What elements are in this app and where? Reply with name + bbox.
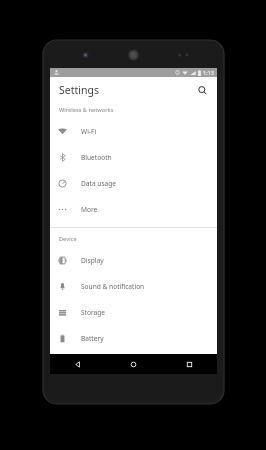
staticText: Display — [81, 256, 104, 265]
button[interactable]: Data usage — [50, 170, 217, 196]
staticText: More — [81, 205, 98, 214]
button[interactable]: Storage — [50, 299, 217, 325]
button[interactable]: Back — [50, 354, 105, 374]
button[interactable]: Bluetooth — [50, 144, 217, 170]
button[interactable]: Search — [194, 82, 210, 98]
button[interactable]: Recent apps — [161, 354, 217, 374]
button[interactable]: Battery — [50, 325, 217, 351]
staticText: Settings — [59, 83, 99, 97]
button[interactable]: Sound & notification — [50, 273, 217, 299]
staticText: Sound & notification — [81, 282, 145, 291]
button[interactable]: Home — [105, 354, 161, 374]
staticText: Data usage — [81, 179, 117, 188]
staticText: Wi-Fi — [81, 127, 97, 136]
button[interactable]: More — [50, 196, 217, 222]
staticText: Storage — [81, 308, 106, 317]
button[interactable]: Display — [50, 247, 217, 273]
staticText: Bluetooth — [81, 153, 112, 162]
staticText: Battery — [81, 334, 104, 343]
staticText: Wireless & networks — [59, 106, 114, 114]
staticText: Device — [59, 235, 77, 243]
staticText: 1:13 — [203, 69, 214, 76]
button[interactable]: Wi-Fi — [50, 118, 217, 144]
